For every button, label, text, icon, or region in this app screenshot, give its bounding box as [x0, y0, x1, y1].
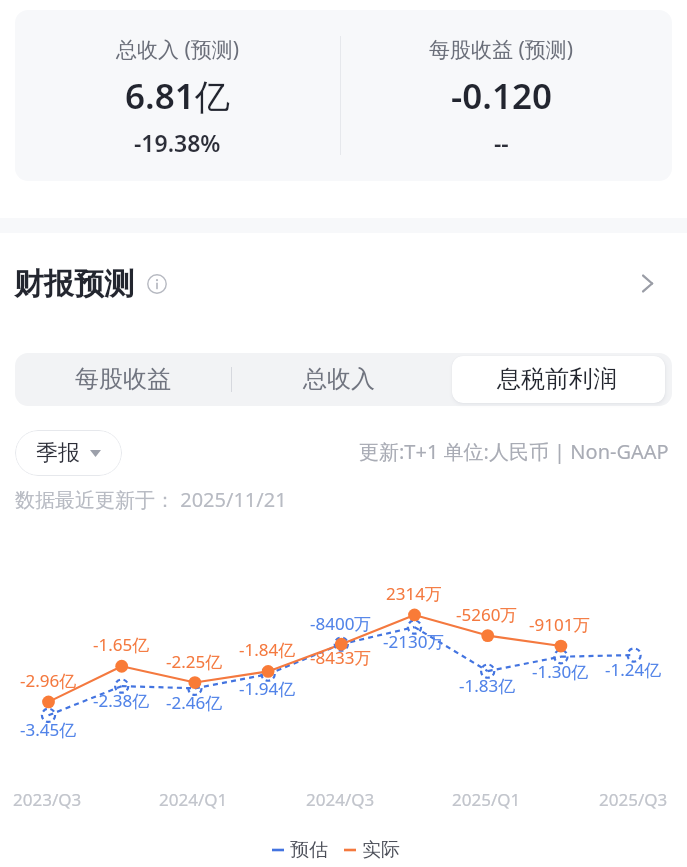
staticText: 息税前利润 [497, 364, 617, 394]
button[interactable] [0, 258, 687, 310]
staticText: -2.46亿 [166, 691, 223, 714]
button[interactable] [15, 10, 672, 181]
staticText: -1.65亿 [93, 633, 150, 656]
button[interactable]: 预估 [272, 838, 400, 862]
staticText: 预估 [290, 838, 328, 862]
staticText: -2.38亿 [93, 689, 150, 712]
staticText: -- [494, 127, 509, 158]
staticText: 更新:T+1 单位:人民币 | Non-GAAP [359, 438, 669, 465]
staticText: 季报 [36, 439, 80, 467]
staticText: 实际 [362, 838, 400, 862]
staticText: -2130万 [383, 630, 445, 653]
button[interactable]: 季报 [15, 430, 122, 476]
button[interactable] [452, 356, 665, 403]
staticText: -0.120 [451, 72, 552, 120]
staticText: -8400万 [310, 612, 372, 635]
staticText: -8433万 [310, 646, 372, 669]
staticText: -1.24亿 [605, 658, 662, 681]
staticText: -2.96亿 [20, 669, 77, 692]
staticText: 每股收益 (预测) [429, 35, 574, 64]
button[interactable] [15, 353, 231, 406]
staticText: 总收入 (预测) [116, 35, 240, 64]
staticText: -2.25亿 [166, 650, 223, 673]
staticText: 2024/Q1 [159, 788, 228, 811]
staticText: -5260万 [456, 603, 518, 626]
staticText: 2314万 [386, 582, 442, 605]
staticText: -1.30亿 [532, 660, 589, 683]
staticText: -1.83亿 [459, 674, 516, 697]
staticText: 2025/Q3 [599, 788, 668, 811]
staticText: 2023/Q3 [13, 788, 82, 811]
staticText: -19.38% [134, 127, 221, 158]
staticText: 数据最近更新于： 2025/11/21 [15, 486, 287, 513]
other: More forecasts [642, 274, 653, 293]
staticText: 6.81亿 [125, 72, 230, 120]
staticText: 2024/Q3 [306, 788, 375, 811]
staticText: 总收入 [303, 364, 375, 394]
staticText: -3.45亿 [20, 718, 77, 741]
staticText: 2025/Q1 [452, 788, 521, 811]
button[interactable] [232, 353, 452, 406]
staticText: 财报预测 [14, 265, 134, 303]
staticText: 每股收益 [75, 364, 171, 394]
staticText: -1.84亿 [239, 638, 296, 661]
staticText: -9101万 [529, 613, 591, 636]
staticText: -1.94亿 [239, 677, 296, 700]
